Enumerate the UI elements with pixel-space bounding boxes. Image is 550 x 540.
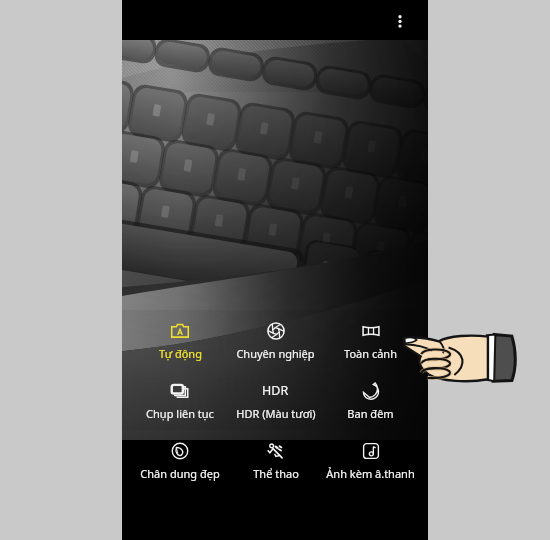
staticText: HDR (Màu tươi) [236,406,316,421]
button[interactable]: Ảnh kèm â.thanh [323,430,418,490]
staticText: Ban đêm [347,406,394,421]
button[interactable]: Thể thao [228,430,323,490]
button[interactable]: Chuyên nghiệp [228,310,323,370]
staticText: Thể thao [253,466,299,481]
button[interactable]: More options [385,5,415,35]
staticText: Chụp liên tục [146,406,214,421]
staticText: Toàn cảnh [344,346,397,361]
staticText: Chuyên nghiệp [236,346,315,361]
staticText: Tự động [159,346,202,361]
button[interactable]: HDR [228,370,323,430]
staticText: Chân dung đẹp [140,466,220,481]
button[interactable]: Chân dung đẹp [132,430,228,490]
button[interactable]: Toàn cảnh [323,310,418,370]
button[interactable]: Chụp liên tục [132,370,228,430]
button[interactable]: Ban đêm [323,370,418,430]
button[interactable]: Tự động [132,310,228,370]
staticText: Ảnh kèm â.thanh [326,466,415,481]
staticText: HDR [262,382,289,399]
